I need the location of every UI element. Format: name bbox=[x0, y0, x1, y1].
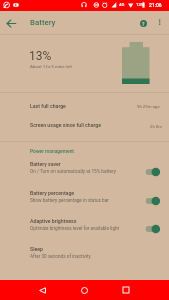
staticText: Screen usage since full charge bbox=[30, 122, 102, 128]
staticText: Battery percentage bbox=[30, 190, 75, 196]
staticText: 13% bbox=[29, 49, 52, 63]
button[interactable]: More options bbox=[150, 13, 168, 33]
staticText: 21:06 bbox=[149, 2, 162, 8]
staticText: 4G bbox=[119, 2, 125, 7]
staticText: Battery saver bbox=[30, 161, 61, 167]
button[interactable]: Toggle bbox=[142, 164, 164, 180]
button[interactable]: Battery percentage bbox=[0, 187, 169, 215]
staticText: 2h 0m bbox=[150, 124, 163, 129]
button[interactable]: Battery saver bbox=[0, 158, 169, 186]
staticText: About 1 hr 5 mins left bbox=[30, 64, 72, 69]
button[interactable]: Toggle bbox=[142, 193, 164, 209]
staticText: 9h 29m ago bbox=[137, 104, 160, 109]
staticText: Show battery percentage in status bar bbox=[30, 198, 109, 204]
staticText: ? bbox=[142, 21, 145, 27]
button[interactable]: Adaptive brightness bbox=[0, 215, 169, 243]
staticText: Last full charge bbox=[30, 103, 66, 109]
button[interactable]: Navigate up bbox=[0, 11, 22, 35]
button[interactable]: Back bbox=[30, 280, 54, 300]
staticText: Battery bbox=[30, 18, 56, 27]
button[interactable]: Last full charge bbox=[0, 97, 169, 116]
button[interactable]: Help bbox=[134, 13, 152, 33]
button[interactable]: Screen usage since full charge bbox=[0, 116, 169, 135]
staticText: 13% bbox=[136, 2, 144, 7]
staticText: Power management bbox=[30, 148, 74, 154]
staticText: Adaptive brightness bbox=[30, 218, 77, 224]
staticText: Sleep bbox=[30, 246, 43, 252]
button[interactable]: Recent apps bbox=[114, 280, 138, 300]
button[interactable]: Toggle bbox=[142, 221, 164, 237]
button[interactable]: Sleep bbox=[0, 243, 169, 271]
button[interactable]: Home bbox=[72, 280, 96, 300]
staticText: Optimize brightness level for available … bbox=[30, 226, 120, 232]
staticText: On / Turn on automatically at 15% batter… bbox=[30, 169, 116, 175]
staticText: After 30 seconds of inactivity bbox=[30, 254, 91, 260]
